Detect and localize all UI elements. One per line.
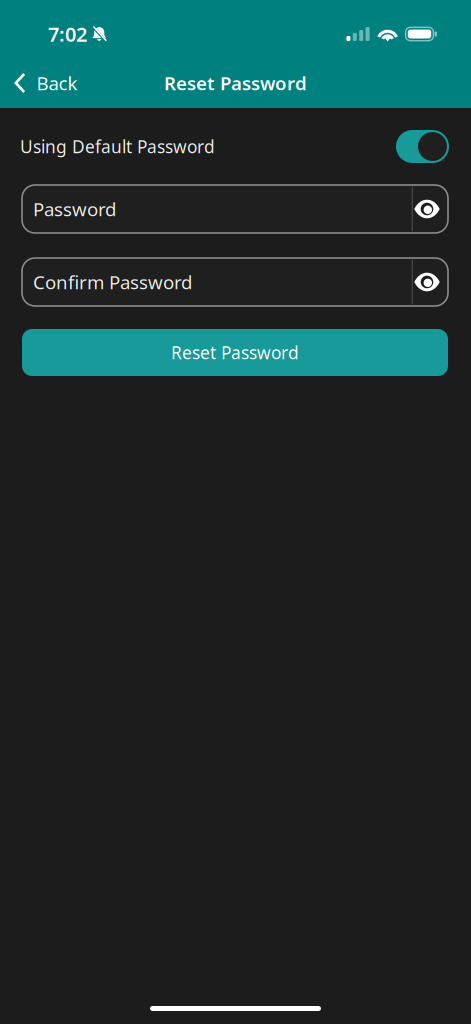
button[interactable]: Back	[0, 62, 90, 104]
button[interactable]: Show Password	[412, 186, 448, 232]
staticText: Confirm Password	[33, 270, 192, 294]
button[interactable]: Show Confirm Password	[412, 259, 448, 305]
staticText: 7:02	[48, 21, 87, 47]
staticText: Using Default Password	[20, 135, 215, 158]
staticText: Reset Password	[164, 71, 307, 95]
staticText: Reset Password	[171, 341, 299, 364]
button[interactable]: Using Default Password	[396, 130, 449, 163]
staticText: Password	[33, 197, 116, 221]
staticText: Back	[37, 71, 78, 95]
button[interactable]: Reset Password	[22, 329, 448, 376]
